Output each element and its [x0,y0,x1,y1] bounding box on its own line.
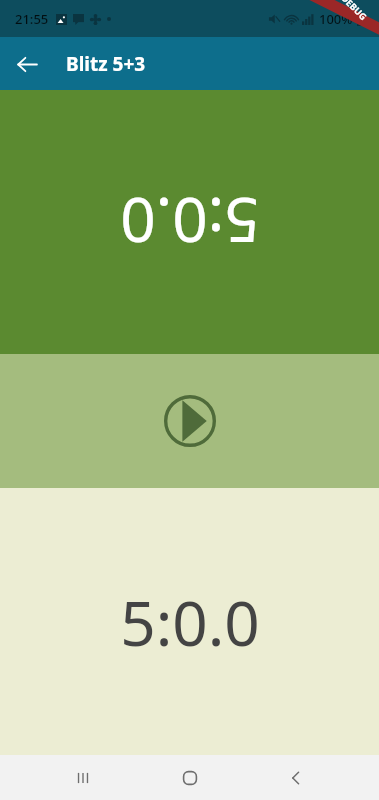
staticText: Blitz 5+3 [66,51,146,77]
button[interactable]: 5:0.0 [0,488,379,755]
staticText: 21:55 [15,10,49,28]
staticText: 5:0.0 [120,580,260,664]
button[interactable]: Recents [59,755,107,800]
button[interactable]: Back [6,43,48,85]
staticText: 100% [319,10,353,28]
button[interactable]: Play [162,393,218,449]
button[interactable]: 5:0.0 [0,90,379,354]
button[interactable]: Back [272,755,320,800]
button[interactable]: Home [166,755,214,800]
staticText: DEBUG [339,0,370,22]
staticText: 5:0.0 [120,180,260,264]
